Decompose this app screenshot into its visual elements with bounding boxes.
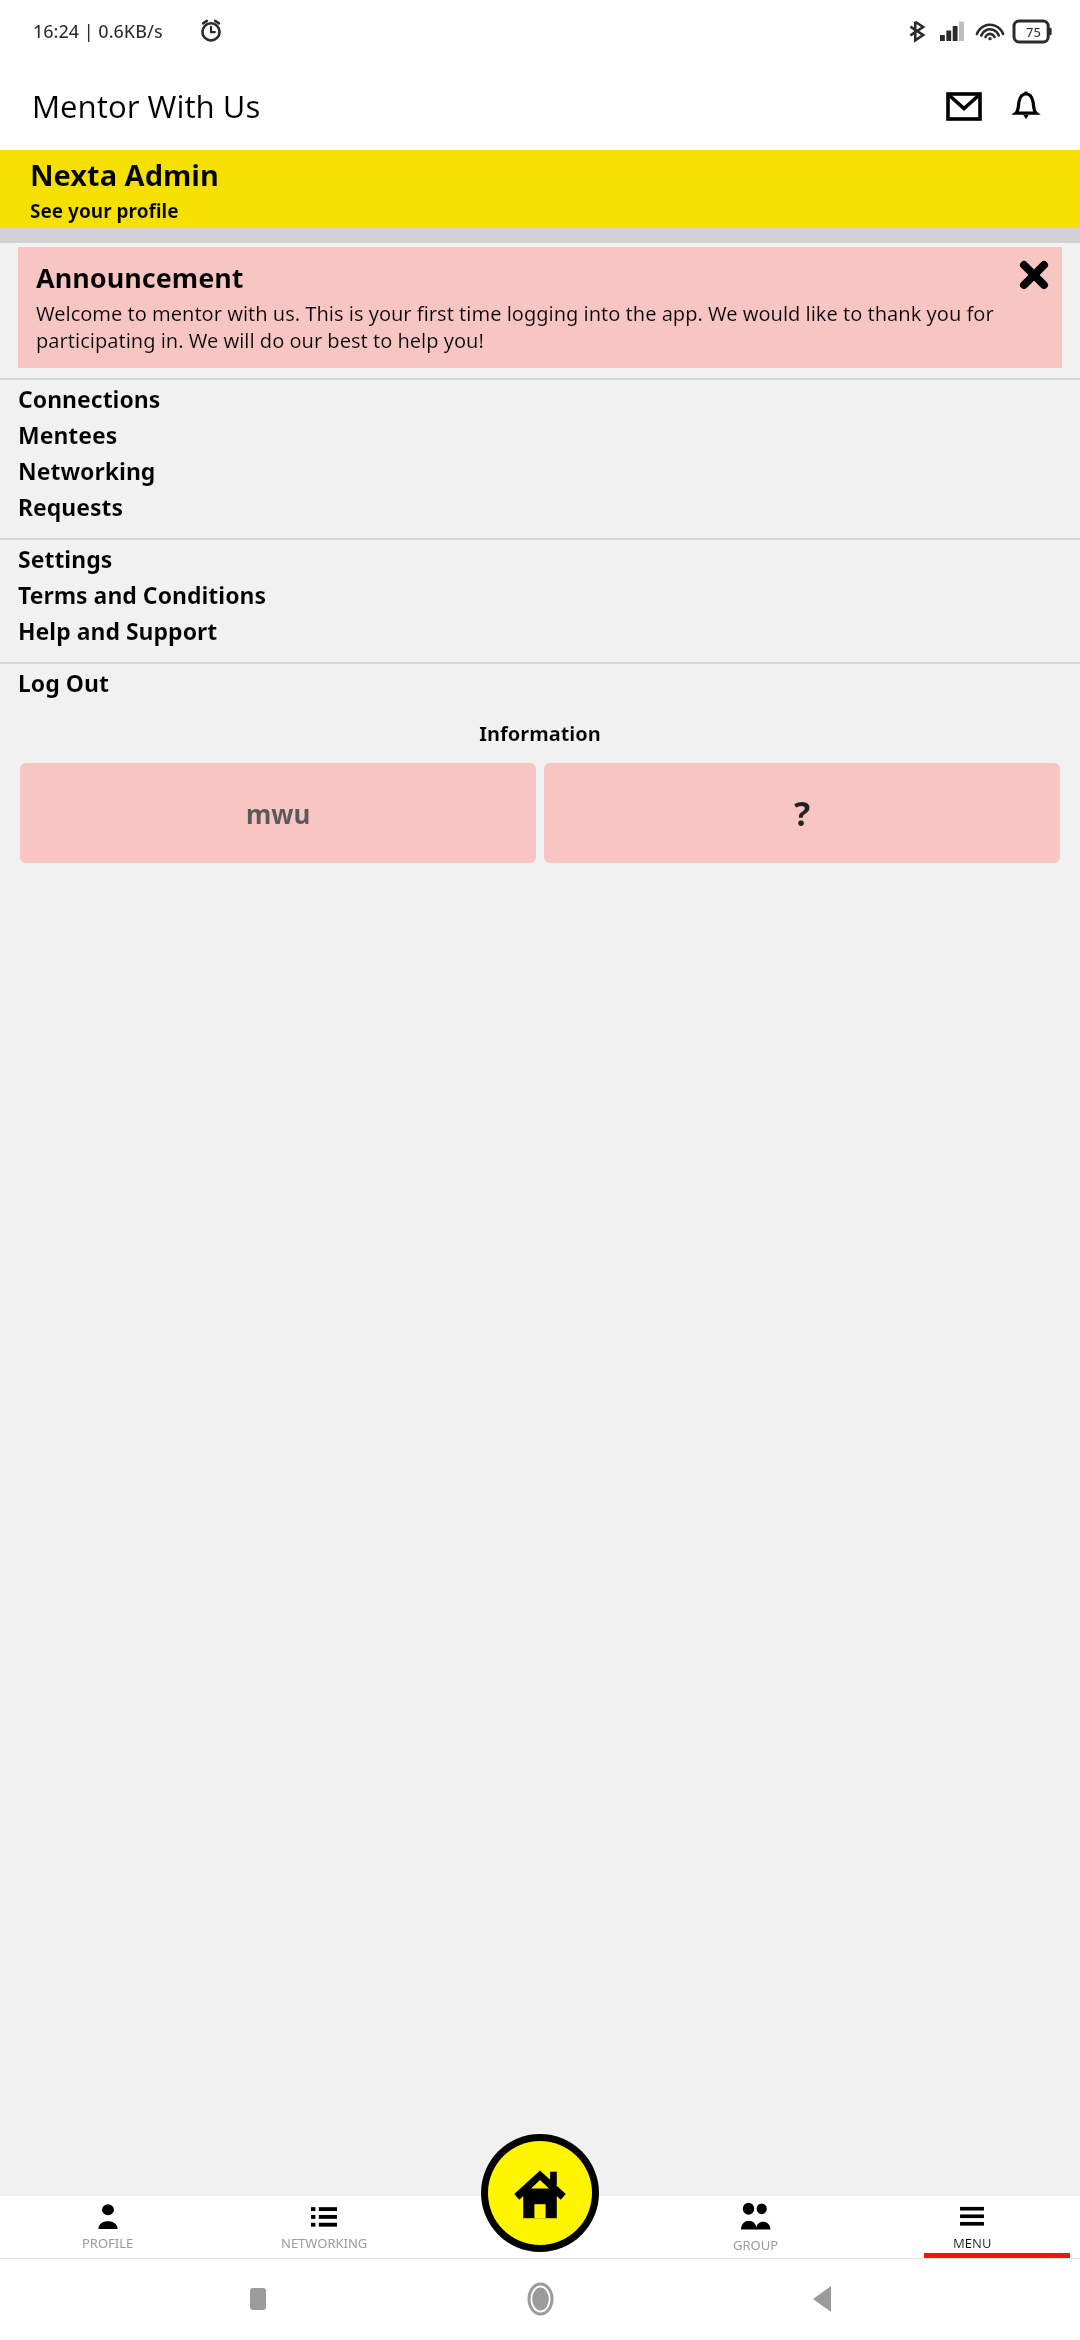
staticText: Settings (18, 543, 113, 574)
button[interactable]: Nexta Admin (0, 150, 1080, 228)
button[interactable]: mwu (20, 763, 536, 863)
staticText: 75 (1026, 23, 1041, 41)
button[interactable]: Help and Support (0, 612, 1080, 648)
staticText: GROUP (733, 2236, 779, 2254)
button[interactable]: Notifications (1000, 80, 1052, 132)
staticText: Welcome to mentor with us. This is your … (36, 300, 1044, 354)
button[interactable]: PROFILE (0, 2196, 216, 2258)
staticText: Mentees (18, 419, 118, 450)
button[interactable]: Home (516, 2275, 564, 2323)
button[interactable]: Messages (938, 80, 990, 132)
staticText: Mentor With Us (32, 85, 261, 127)
button[interactable]: Settings (0, 540, 1080, 576)
staticText: Log Out (18, 667, 109, 698)
button[interactable]: NETWORKING (216, 2196, 432, 2258)
button[interactable]: Requests (0, 488, 1080, 524)
button[interactable]: Close announcement (1012, 253, 1056, 297)
button[interactable]: Recents (234, 2275, 282, 2323)
staticText: Information (0, 720, 1080, 747)
button[interactable]: GROUP (648, 2196, 864, 2258)
staticText: See your profile (30, 198, 179, 224)
staticText: Help and Support (18, 615, 218, 646)
staticText: Terms and Conditions (18, 579, 267, 610)
staticText: mwu (246, 796, 311, 831)
staticText: Connections (18, 383, 161, 414)
staticText: PROFILE (82, 2234, 134, 2252)
staticText: ? (794, 790, 811, 836)
button[interactable]: Terms and Conditions (0, 576, 1080, 612)
staticText: MENU (953, 2234, 992, 2252)
staticText: NETWORKING (281, 2234, 368, 2252)
staticText: Nexta Admin (30, 155, 219, 194)
button[interactable]: Home (481, 2134, 599, 2252)
button[interactable]: ? (544, 763, 1060, 863)
button[interactable]: Mentees (0, 416, 1080, 452)
button[interactable]: Networking (0, 452, 1080, 488)
button[interactable]: Back (798, 2275, 846, 2323)
button[interactable]: Log Out (0, 664, 1080, 700)
button[interactable]: Connections (0, 380, 1080, 416)
button[interactable]: MENU (864, 2196, 1080, 2258)
staticText: 16:24 | 0.6KB/s (33, 19, 163, 44)
staticText: Announcement (36, 259, 244, 296)
staticText: Networking (18, 455, 156, 486)
staticText: Requests (18, 491, 124, 522)
